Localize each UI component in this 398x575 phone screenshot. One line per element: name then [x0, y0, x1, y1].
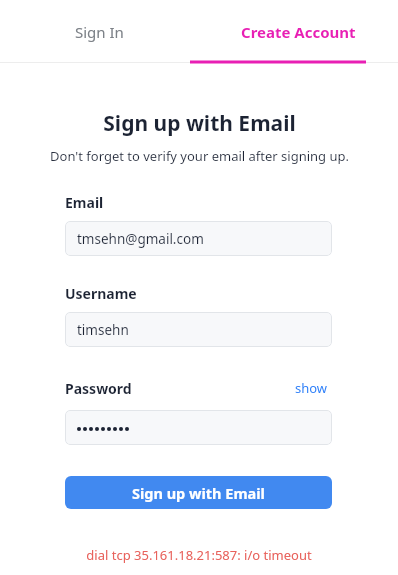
- staticText: Sign In: [75, 22, 124, 42]
- staticText: Don't forget to verify your email after …: [50, 147, 349, 165]
- staticText: Email: [65, 193, 104, 212]
- button[interactable]: timsehn: [65, 312, 332, 347]
- staticText: show: [295, 379, 328, 397]
- button[interactable]: tmsehn@gmail.com: [65, 221, 332, 256]
- button[interactable]: Create Account: [199, 0, 398, 64]
- staticText: dial tcp 35.161.18.21:587: i/o timeout: [86, 546, 312, 564]
- staticText: Password: [65, 379, 132, 398]
- button[interactable]: Sign up with Email: [65, 476, 332, 509]
- button[interactable]: Sign In: [0, 0, 199, 64]
- button[interactable]: show: [291, 375, 332, 401]
- staticText: tmsehn@gmail.com: [77, 230, 204, 248]
- button[interactable]: [65, 410, 332, 445]
- staticText: Create Account: [241, 22, 356, 42]
- staticText: Username: [65, 284, 137, 303]
- staticText: Sign up with Email: [132, 483, 265, 503]
- staticText: Sign up with Email: [103, 109, 296, 138]
- staticText: timsehn: [77, 321, 129, 339]
